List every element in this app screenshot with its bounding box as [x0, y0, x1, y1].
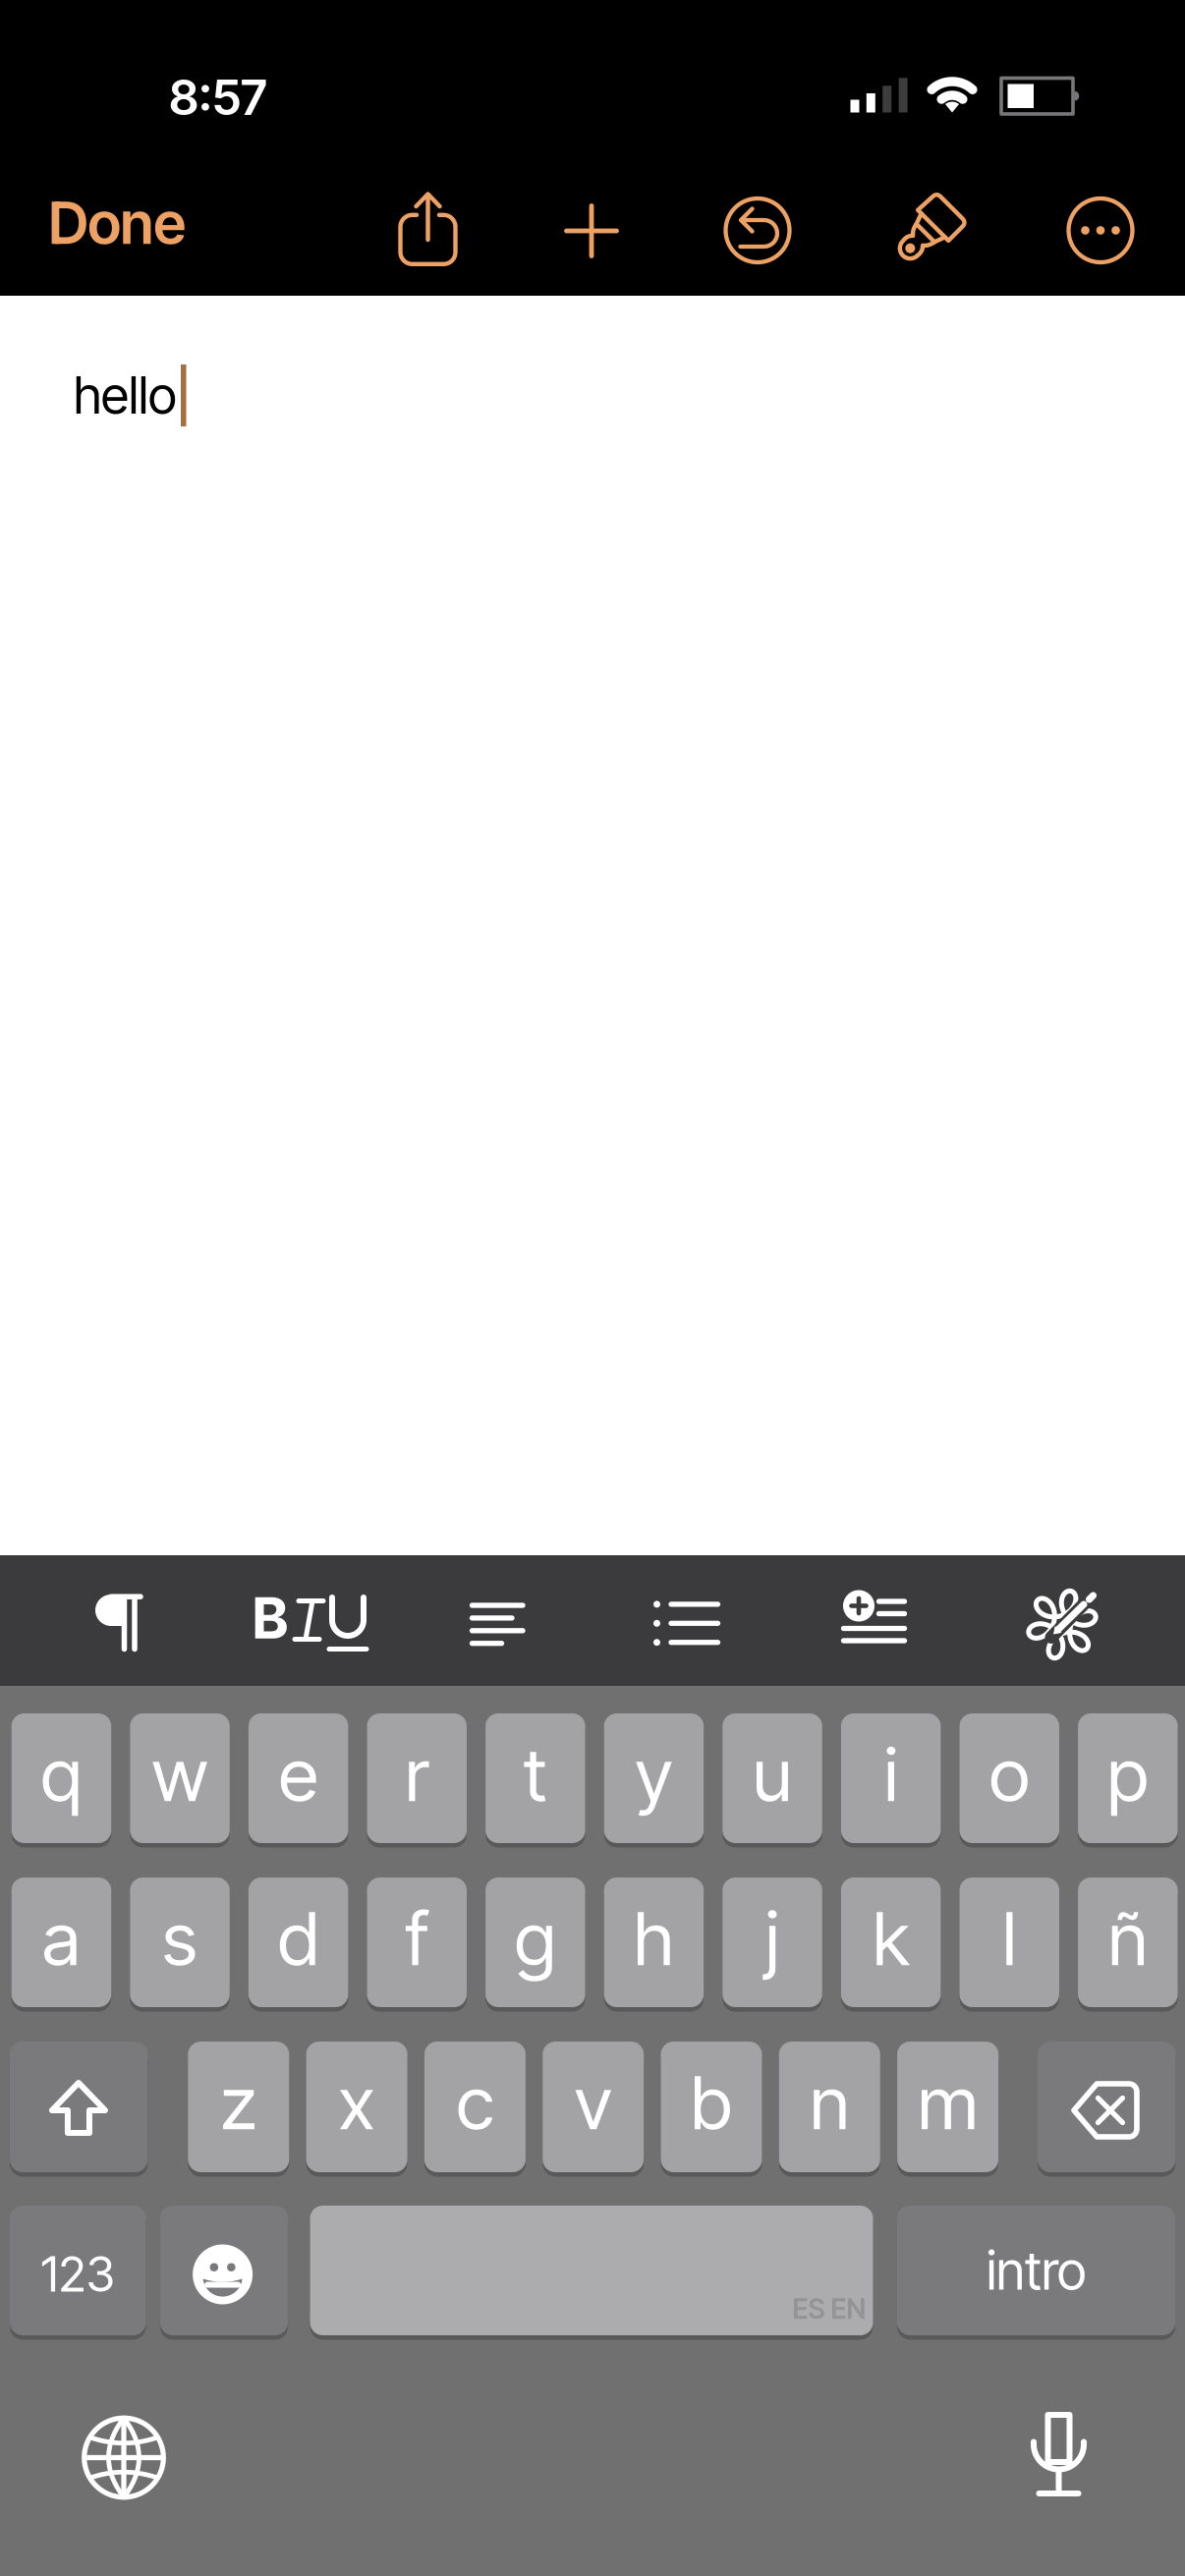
button[interactable]: Done — [49, 188, 185, 258]
staticText: b — [691, 2058, 732, 2147]
button[interactable]: Alignment — [469, 1602, 526, 1647]
button[interactable]: e — [248, 1713, 348, 1843]
staticText: 8:57 — [169, 68, 267, 127]
button[interactable]: Writing Tools — [1018, 1580, 1106, 1669]
staticText: o — [989, 1730, 1030, 1819]
staticText: s — [162, 1894, 197, 1983]
button[interactable]: Format — [888, 192, 967, 270]
button[interactable]: Space — [310, 2206, 873, 2335]
staticText: ES EN — [792, 2292, 866, 2325]
staticText: t — [524, 1730, 547, 1819]
button[interactable]: a — [11, 1877, 111, 2007]
button[interactable]: y — [604, 1713, 704, 1843]
button[interactable]: Dictate — [1034, 2412, 1085, 2496]
button[interactable]: Undo — [723, 196, 792, 265]
button[interactable]: More — [1066, 196, 1135, 265]
button[interactable]: v — [543, 2042, 644, 2172]
staticText: Done — [49, 188, 185, 258]
button[interactable]: s — [130, 1877, 230, 2007]
button[interactable]: p — [1078, 1713, 1178, 1843]
staticText: h — [634, 1894, 674, 1983]
staticText: i — [884, 1730, 898, 1819]
button[interactable]: n — [779, 2042, 880, 2172]
staticText: x — [339, 2058, 375, 2147]
button[interactable]: g — [485, 1877, 585, 2007]
staticText: z — [220, 2058, 257, 2147]
button[interactable]: Numbers — [10, 2206, 146, 2335]
staticText: m — [918, 2058, 978, 2147]
staticText: intro — [987, 2239, 1086, 2302]
staticText: hello — [74, 364, 177, 426]
button[interactable]: c — [424, 2042, 526, 2172]
staticText: y — [635, 1730, 673, 1819]
button[interactable]: x — [306, 2042, 407, 2172]
staticText: 123 — [41, 2245, 115, 2303]
staticText: a — [42, 1894, 81, 1983]
staticText: u — [753, 1730, 792, 1819]
button[interactable]: Emoji — [160, 2206, 288, 2335]
button[interactable]: Shift — [10, 2042, 148, 2172]
staticText: e — [279, 1730, 318, 1819]
staticText: d — [278, 1894, 319, 1983]
button[interactable]: w — [130, 1713, 230, 1843]
button[interactable]: j — [722, 1877, 822, 2007]
button[interactable]: z — [188, 2042, 289, 2172]
staticText: w — [152, 1730, 208, 1819]
staticText: q — [41, 1730, 82, 1819]
staticText: v — [575, 2058, 612, 2147]
button[interactable]: m — [897, 2042, 998, 2172]
staticText: r — [405, 1730, 429, 1819]
button[interactable]: f — [367, 1877, 467, 2007]
staticText: g — [515, 1894, 556, 1983]
staticText: l — [1002, 1894, 1016, 1983]
button[interactable]: Return — [897, 2206, 1175, 2335]
button[interactable]: Bold Italic Underline — [246, 1591, 369, 1652]
button[interactable]: q — [11, 1713, 111, 1843]
button[interactable]: u — [722, 1713, 822, 1843]
staticText: k — [873, 1894, 909, 1983]
button[interactable]: ñ — [1078, 1877, 1178, 2007]
button[interactable]: l — [959, 1877, 1059, 2007]
button[interactable]: i — [841, 1713, 941, 1843]
staticText: j — [765, 1894, 779, 1983]
staticText: ñ — [1108, 1894, 1147, 1983]
button[interactable]: k — [841, 1877, 941, 2007]
button[interactable]: o — [959, 1713, 1059, 1843]
button[interactable]: Delete — [1038, 2042, 1176, 2172]
button[interactable]: Next keyboard — [82, 2415, 166, 2500]
button[interactable]: h — [604, 1877, 704, 2007]
button[interactable]: d — [248, 1877, 348, 2007]
staticText: B — [253, 1584, 288, 1652]
button[interactable]: Share — [396, 190, 459, 268]
staticText: p — [1107, 1730, 1148, 1819]
staticText: n — [810, 2058, 849, 2147]
button[interactable]: r — [367, 1713, 467, 1843]
button[interactable]: Paragraph style — [93, 1592, 144, 1652]
button[interactable]: Add — [564, 203, 619, 258]
button[interactable]: b — [661, 2042, 762, 2172]
button[interactable]: List — [653, 1601, 720, 1646]
staticText: f — [406, 1894, 428, 1983]
staticText: c — [456, 2058, 494, 2147]
button[interactable]: Insert — [843, 1597, 906, 1645]
button[interactable]: t — [485, 1713, 585, 1843]
